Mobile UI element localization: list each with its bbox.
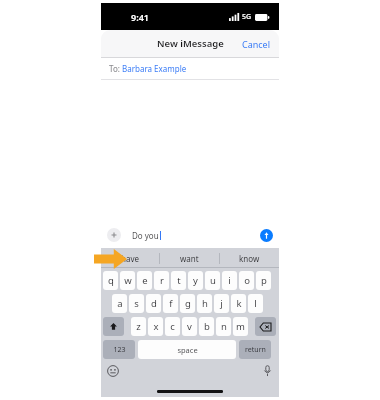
button[interactable]: w — [120, 271, 135, 290]
button[interactable]: u — [205, 271, 220, 290]
button[interactable]: l — [248, 294, 263, 313]
button[interactable]: Backspace — [255, 317, 276, 336]
button[interactable]: have — [101, 248, 159, 268]
staticText: n — [221, 320, 227, 333]
button[interactable]: want — [160, 248, 219, 268]
staticText: q — [108, 274, 114, 287]
staticText: know — [239, 253, 260, 264]
button[interactable]: y — [188, 271, 203, 290]
button[interactable]: m — [233, 317, 248, 336]
staticText: j — [220, 297, 223, 310]
staticText: 123 — [113, 345, 126, 355]
staticText: p — [261, 274, 267, 287]
button[interactable]: 123 — [103, 340, 135, 359]
button[interactable]: d — [146, 294, 161, 313]
button[interactable]: r — [154, 271, 169, 290]
button[interactable]: Dictation — [263, 365, 272, 377]
staticText: w — [124, 274, 132, 287]
staticText: r — [160, 274, 164, 287]
staticText: i — [228, 274, 231, 287]
button[interactable]: b — [199, 317, 214, 336]
staticText: space — [177, 345, 198, 355]
button[interactable]: f — [163, 294, 178, 313]
staticText: g — [185, 297, 191, 310]
staticText: k — [236, 297, 242, 310]
button[interactable]: Add attachment — [107, 228, 121, 242]
staticText: Do you — [132, 230, 159, 241]
staticText: l — [254, 297, 257, 310]
button[interactable]: h — [197, 294, 212, 313]
button[interactable]: p — [256, 271, 271, 290]
button[interactable]: n — [216, 317, 231, 336]
staticText: o — [244, 274, 250, 287]
staticText: return — [245, 345, 266, 355]
staticText: v — [187, 320, 192, 333]
button[interactable]: t — [171, 271, 186, 290]
staticText: h — [202, 297, 208, 310]
staticText: a — [117, 297, 123, 310]
button[interactable]: j — [214, 294, 229, 313]
button[interactable]: i — [222, 271, 237, 290]
staticText: m — [236, 320, 245, 333]
staticText: u — [210, 274, 216, 287]
button[interactable]: Send — [260, 229, 273, 242]
staticText: To: — [109, 63, 122, 74]
button[interactable]: space — [138, 340, 236, 359]
staticText: e — [142, 274, 148, 287]
button[interactable]: return — [239, 340, 271, 359]
button[interactable]: v — [182, 317, 197, 336]
staticText: x — [153, 320, 159, 333]
button[interactable]: Cancel — [242, 38, 271, 50]
button[interactable]: e — [137, 271, 152, 290]
button[interactable]: To: — [101, 58, 279, 79]
button[interactable]: Emoji — [107, 365, 119, 377]
button[interactable]: x — [148, 317, 163, 336]
button[interactable]: q — [103, 271, 118, 290]
staticText: want — [180, 253, 199, 264]
button[interactable]: Shift — [103, 317, 124, 336]
staticText: b — [204, 320, 210, 333]
button[interactable]: k — [231, 294, 246, 313]
button[interactable]: a — [112, 294, 127, 313]
staticText: Barbara Example — [122, 63, 187, 74]
staticText: z — [136, 320, 141, 333]
button[interactable]: c — [165, 317, 180, 336]
staticText: New iMessage — [157, 37, 224, 50]
button[interactable]: g — [180, 294, 195, 313]
staticText: 9:41 — [131, 11, 149, 23]
button[interactable]: s — [129, 294, 144, 313]
staticText: have — [121, 253, 140, 264]
staticText: s — [134, 297, 139, 310]
staticText: Cancel — [242, 38, 271, 50]
button[interactable]: know — [220, 248, 279, 268]
staticText: f — [169, 297, 173, 310]
staticText: 5G — [242, 12, 252, 22]
button[interactable]: Do you — [126, 227, 256, 243]
button[interactable]: o — [239, 271, 254, 290]
button[interactable]: z — [131, 317, 146, 336]
staticText: d — [151, 297, 157, 310]
staticText: c — [170, 320, 175, 333]
staticText: y — [193, 274, 198, 287]
staticText: t — [177, 274, 181, 287]
